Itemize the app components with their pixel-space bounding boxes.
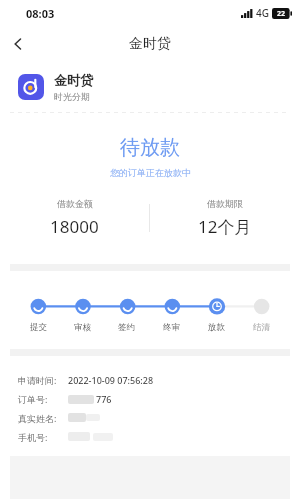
button[interactable]: 审核 xyxy=(60,322,104,333)
button[interactable]: 终审 xyxy=(149,322,194,333)
staticText: 776 xyxy=(96,393,112,405)
staticText: 金时贷 xyxy=(54,72,93,88)
staticText: 金时贷 xyxy=(129,35,171,53)
staticText: 待放款 xyxy=(120,135,180,160)
staticText: 结清 xyxy=(253,322,270,333)
staticText: 签约 xyxy=(118,322,135,333)
staticText: 提交 xyxy=(30,322,47,333)
button[interactable]: 提交 xyxy=(16,322,60,333)
staticText: 订单号: xyxy=(18,393,48,405)
staticText: 借款期限 xyxy=(207,198,243,209)
button[interactable]: 签约 xyxy=(104,322,149,333)
staticText: 时光分期 xyxy=(54,91,90,102)
staticText: 真实姓名: xyxy=(18,412,57,424)
staticText: 放款 xyxy=(208,322,225,333)
staticText: 22 xyxy=(277,9,286,19)
staticText: 审核 xyxy=(74,322,91,333)
staticText: 手机号: xyxy=(18,431,48,443)
staticText: 申请时间: xyxy=(18,374,57,386)
staticText: 4G xyxy=(256,6,269,20)
staticText: 借款金额 xyxy=(57,198,93,209)
staticText: 终审 xyxy=(163,322,180,333)
staticText: 2022-10-09 07:56:28 xyxy=(68,374,154,386)
button[interactable]: 放款 xyxy=(194,322,239,333)
button[interactable]: Back xyxy=(0,26,36,62)
button[interactable]: 结清 xyxy=(239,322,284,333)
button[interactable]: 金时贷 xyxy=(0,62,300,112)
staticText: 18000 xyxy=(50,215,99,238)
staticText: 12个月 xyxy=(198,215,252,238)
staticText: 08:03 xyxy=(26,6,55,21)
staticText: 您的订单正在放款中 xyxy=(110,167,191,178)
